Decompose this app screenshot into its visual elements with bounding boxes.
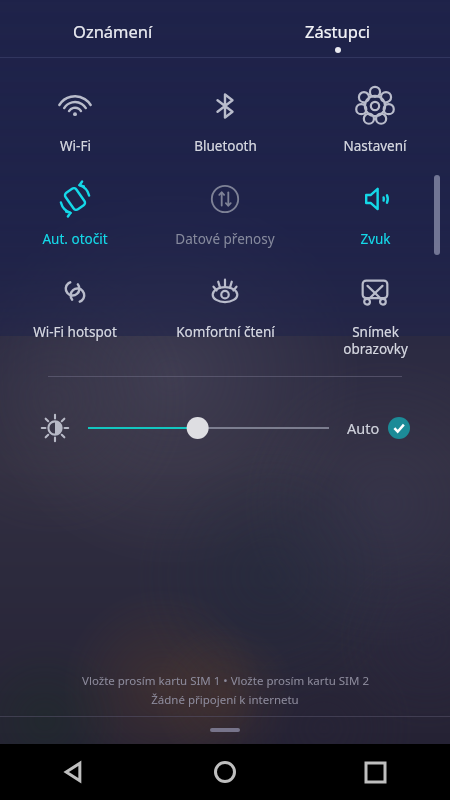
button[interactable]: Wi-Fi hotspot <box>0 270 150 341</box>
staticText: Snímek obrazovky <box>343 323 408 358</box>
button[interactable]: Home <box>150 744 300 800</box>
staticText: Zástupci <box>305 20 371 42</box>
staticText: Žádné připojení k internetu <box>151 692 299 708</box>
other: Brightness <box>40 413 70 443</box>
button[interactable]: Snímek obrazovky <box>300 270 450 358</box>
staticText: Wi-Fi hotspot <box>33 323 117 341</box>
staticText: Wi-Fi <box>60 137 91 155</box>
button[interactable]: Nastavení <box>300 84 450 155</box>
staticText: Komfortní čtení <box>176 323 275 341</box>
staticText: Auto <box>347 418 380 438</box>
button[interactable]: Oznámení <box>0 0 225 58</box>
button[interactable]: Zástupci <box>225 0 450 58</box>
button[interactable]: Wi-Fi <box>0 84 150 155</box>
button[interactable]: Recent apps <box>300 744 450 800</box>
button[interactable] <box>88 413 329 443</box>
button[interactable]: Komfortní čtení <box>150 270 300 341</box>
button[interactable]: Aut. otočit <box>0 177 150 248</box>
button[interactable]: Auto <box>347 417 410 439</box>
staticText: Datové přenosy <box>175 230 275 248</box>
staticText: Oznámení <box>73 20 153 42</box>
button[interactable]: Datové přenosy <box>150 177 300 248</box>
button[interactable]: Collapse panel <box>210 728 240 732</box>
staticText: Zvuk <box>360 230 391 248</box>
staticText: Aut. otočit <box>42 230 108 248</box>
staticText: Bluetooth <box>194 137 257 155</box>
button[interactable]: Bluetooth <box>150 84 300 155</box>
staticText: Nastavení <box>343 137 407 155</box>
button[interactable]: Zvuk <box>300 177 450 248</box>
button[interactable]: Back <box>0 744 150 800</box>
staticText: Vložte prosím kartu SIM 1 • Vložte prosí… <box>82 673 369 689</box>
